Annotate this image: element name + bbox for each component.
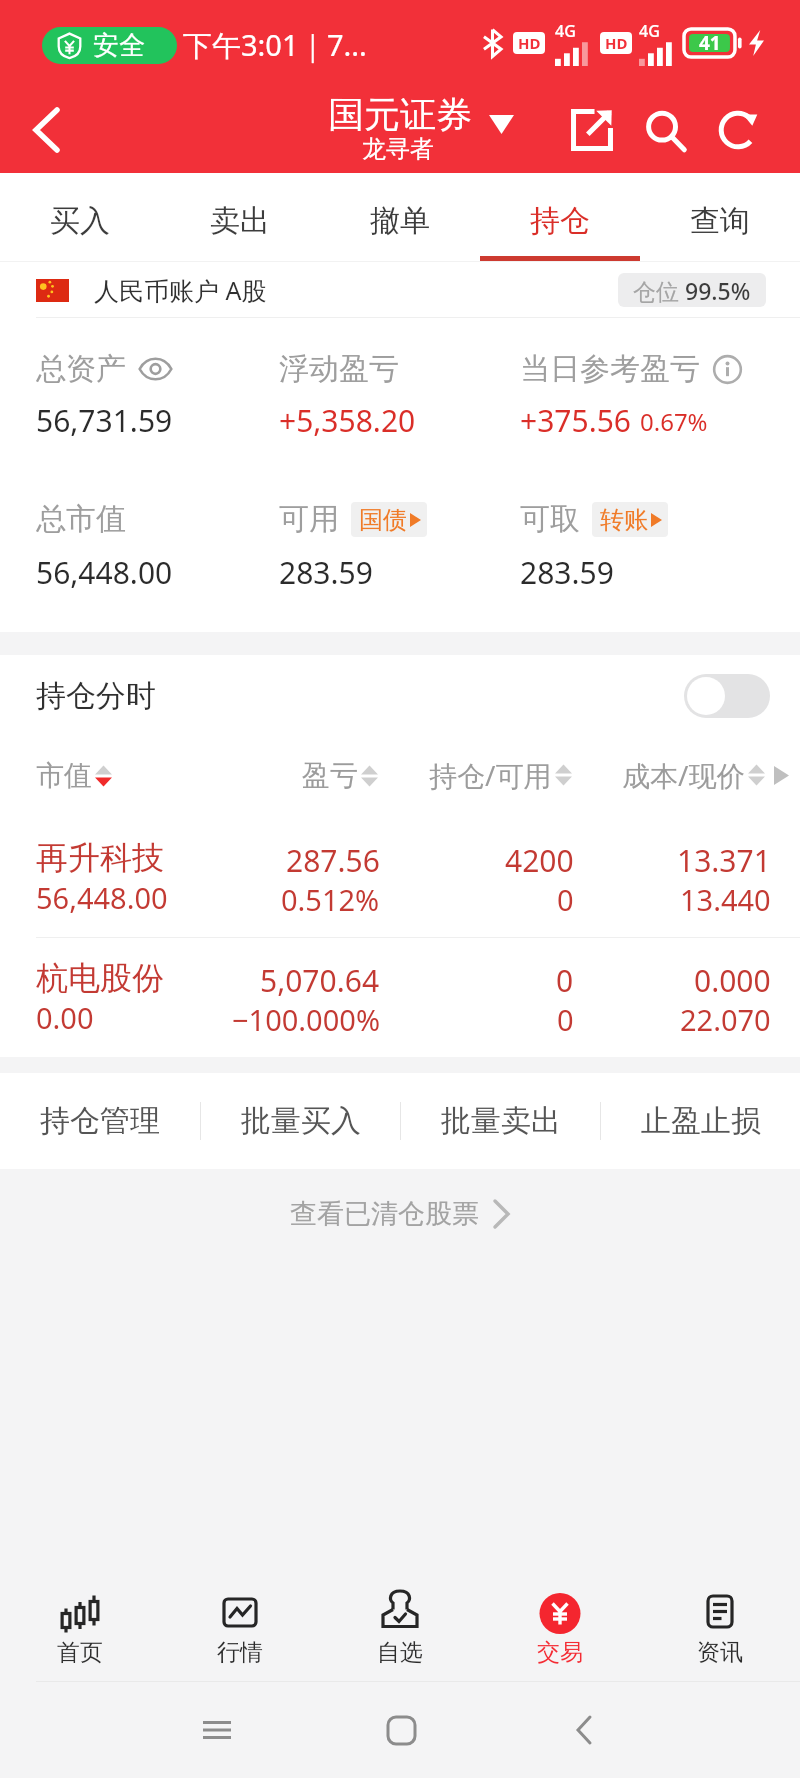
staticText: 卖出 — [210, 202, 270, 240]
button[interactable]: 首页 — [0, 1572, 160, 1682]
staticText: 资讯 — [697, 1638, 743, 1667]
staticText: 13.440 — [680, 880, 771, 919]
staticText: 转账 — [600, 505, 648, 535]
button[interactable]: 止盈止损 — [601, 1073, 800, 1169]
staticText: 0.512% — [281, 880, 380, 919]
staticText: 22.070 — [680, 1000, 771, 1039]
staticText: 当日参考盈亏 — [520, 350, 700, 388]
staticText: 交易 — [537, 1638, 583, 1667]
staticText: 41 — [699, 30, 721, 56]
staticText: 杭电股份 — [36, 958, 164, 998]
button[interactable]: 成本/现价 — [622, 756, 765, 794]
button[interactable]: 资讯 — [640, 1572, 800, 1682]
staticText: 查看已清仓股票 — [290, 1197, 479, 1231]
staticText: 止盈止损 — [641, 1102, 761, 1140]
staticText: 国债 — [359, 505, 407, 535]
staticText: 0.000 — [694, 960, 771, 1001]
button[interactable]: 卖出 — [160, 173, 320, 262]
staticText: 13.371 — [677, 840, 771, 881]
staticText: 再升科技 — [36, 838, 164, 878]
button[interactable]: 批量卖出 — [401, 1073, 600, 1169]
staticText: 首页 — [57, 1638, 103, 1667]
staticText: 可用 — [279, 500, 339, 538]
staticText: 下午3:01｜7... — [183, 25, 367, 65]
staticText: 持仓 — [530, 202, 590, 240]
staticText: HD — [518, 33, 541, 53]
staticText: 查询 — [690, 202, 750, 240]
button[interactable]: 查询 — [640, 173, 800, 262]
button[interactable]: 再升科技 — [0, 814, 800, 933]
button[interactable]: 行情 — [160, 1572, 320, 1682]
staticText: 4G — [639, 20, 660, 42]
button[interactable]: 人民币账户 A股 — [0, 262, 800, 318]
staticText: 批量买入 — [241, 1102, 361, 1140]
staticText: 283.59 — [520, 552, 614, 593]
button[interactable]: 仓位 — [618, 273, 766, 307]
staticText: 可取 — [520, 500, 580, 538]
button[interactable]: 国债 — [351, 502, 427, 537]
staticText: 仓位 — [633, 275, 685, 306]
staticText: −100.000% — [232, 1000, 380, 1039]
staticText: 自选 — [377, 1638, 423, 1667]
button[interactable]: 持仓 — [480, 173, 640, 262]
staticText: 撤单 — [370, 202, 430, 240]
button[interactable]: Share — [556, 86, 628, 173]
staticText: 99.5% — [685, 275, 751, 306]
staticText: 4G — [555, 20, 576, 42]
staticText: 0.67% — [640, 405, 708, 438]
button[interactable]: Back — [0, 86, 92, 173]
staticText: 持仓管理 — [40, 1102, 160, 1140]
staticText: 持仓分时 — [36, 677, 156, 715]
button[interactable]: Back — [523, 1682, 643, 1778]
staticText: 安全 — [93, 29, 145, 62]
staticText: 国元证券 — [328, 92, 472, 137]
staticText: 龙寻者 — [362, 134, 434, 164]
staticText: +375.56 — [520, 400, 631, 441]
staticText: HD — [605, 33, 628, 53]
button[interactable]: 市值 — [36, 758, 112, 793]
button[interactable]: 自选 — [320, 1572, 480, 1682]
button[interactable]: 撤单 — [320, 173, 480, 262]
staticText: 盈亏 — [302, 758, 358, 793]
staticText: 买入 — [50, 202, 110, 240]
staticText: 4200 — [505, 840, 574, 881]
button[interactable]: Recent apps — [157, 1682, 277, 1778]
staticText: 0.00 — [36, 998, 94, 1037]
button[interactable]: 买入 — [0, 173, 160, 262]
staticText: 行情 — [217, 1638, 263, 1667]
button[interactable]: 转账 — [592, 502, 668, 537]
staticText: 56,448.00 — [36, 878, 168, 917]
staticText: 287.56 — [286, 840, 380, 881]
staticText: 成本/现价 — [622, 756, 745, 794]
button[interactable]: Search — [629, 86, 701, 173]
button[interactable]: Home — [341, 1682, 461, 1778]
button[interactable]: 批量买入 — [201, 1073, 400, 1169]
staticText: 总市值 — [36, 500, 126, 538]
staticText: 283.59 — [279, 552, 373, 593]
staticText: 批量卖出 — [441, 1102, 561, 1140]
staticText: 浮动盈亏 — [279, 350, 399, 388]
staticText: 56,731.59 — [36, 400, 173, 441]
button[interactable]: 查看已清仓股票 — [290, 1197, 510, 1231]
button[interactable]: 持仓管理 — [0, 1073, 200, 1169]
staticText: 市值 — [36, 758, 92, 793]
button[interactable]: Refresh — [702, 86, 774, 173]
staticText: +5,358.20 — [279, 400, 416, 441]
button[interactable]: 交易 — [480, 1572, 640, 1682]
staticText: 总资产 — [36, 350, 126, 388]
staticText: 0 — [556, 960, 574, 1001]
staticText: 0 — [557, 880, 574, 919]
button[interactable]: 杭电股份 — [0, 934, 800, 1053]
staticText: 0 — [557, 1000, 574, 1039]
button[interactable]: 盈亏 — [302, 758, 378, 793]
staticText: 持仓/可用 — [429, 756, 552, 794]
button[interactable]: 持仓/可用 — [429, 756, 572, 794]
staticText: 56,448.00 — [36, 552, 173, 593]
button[interactable]: Toggle intraday — [684, 674, 770, 718]
staticText: 5,070.64 — [260, 960, 380, 1001]
staticText: 人民币账户 A股 — [94, 273, 267, 307]
